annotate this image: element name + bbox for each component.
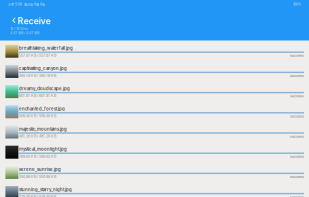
staticText: 481.26 KB / 481.26 KB [19,134,56,138]
staticText: success [290,114,304,118]
button[interactable]: stunning_starry_night.jpg [0,182,309,197]
staticText: dreamy_cloudscape.jpg [19,86,70,91]
staticText: 265.18 KB / 265.18 KB [19,73,56,78]
button[interactable]: captivating_canyon.jpg [0,61,309,81]
staticText: success [290,155,304,159]
staticText: enchanted_forest.jpg [19,106,65,111]
button[interactable]: dreamy_cloudscape.jpg [0,81,309,101]
staticText: success [290,94,304,98]
staticText: 529.40 KB / 529.40 KB [19,194,56,197]
staticText: 100% [293,2,301,6]
button[interactable]: serene_sunrise.jpg [0,162,309,182]
button[interactable]: majestic_mountains.jpg [0,121,309,141]
staticText: 550.86 KB / 550.86 KB [19,174,56,179]
staticText: success [290,74,304,78]
button[interactable]: enchanted_forest.jpg [0,101,309,121]
staticText: 557.87 KB / 557.87 KB [19,53,56,58]
staticText: success [290,134,304,138]
staticText: breathtaking_waterfall.jpg [19,46,73,51]
button[interactable]: breathtaking_waterfall.jpg [0,40,309,61]
staticText: 509.40 KB / 509.40 KB [19,114,56,118]
staticText: 601.81 KB / 601.81 KB [19,93,56,98]
staticText: 4.47 MB / 4.47 MB [10,31,39,35]
button[interactable]: mystical_moonlight.jpg [0,141,309,162]
staticText: captivating_canyon.jpg [19,66,67,71]
staticText: 오후 5:06 월요일 6월 9일 [8,2,45,6]
staticText: Receive [17,16,50,26]
staticText: success [290,54,304,58]
staticText: success [290,195,304,197]
staticText: success [290,175,304,179]
staticText: 589.62 KB / 589.62 KB [19,154,56,159]
staticText: mystical_moonlight.jpg [19,147,67,152]
button[interactable]: Receive [0,0,44,11]
staticText: stunning_starry_night.jpg [19,187,72,192]
staticText: majestic_mountains.jpg [19,126,67,132]
staticText: serene_sunrise.jpg [19,167,61,172]
staticText: 10 / 10 Files [10,27,28,31]
